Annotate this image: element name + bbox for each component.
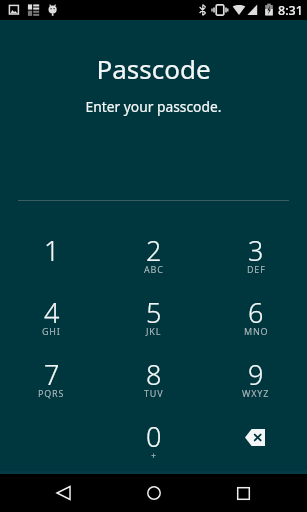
staticText: 1 <box>44 232 60 269</box>
staticText: 3 <box>248 232 264 269</box>
staticText: MNO <box>244 325 269 337</box>
button[interactable]: Recents <box>219 474 267 512</box>
button[interactable]: 9 <box>205 358 307 420</box>
staticText: TUV <box>144 387 164 399</box>
staticText: 4 <box>44 294 60 331</box>
staticText: PQRS <box>38 387 65 399</box>
button[interactable]: 2 <box>103 234 205 296</box>
staticText: 8:31 <box>278 2 303 19</box>
button[interactable]: 8 <box>103 358 205 420</box>
staticText: 8 <box>146 356 162 393</box>
staticText: 9 <box>248 356 264 393</box>
button[interactable]: 3 <box>205 234 307 296</box>
button[interactable]: 7 <box>0 358 103 420</box>
button[interactable]: 4 <box>0 296 103 358</box>
staticText: 6 <box>248 294 264 331</box>
staticText: GHI <box>42 325 61 337</box>
button[interactable]: 0 <box>103 420 205 482</box>
button[interactable]: 1 <box>0 234 103 296</box>
staticText: 0 <box>146 418 162 455</box>
staticText: JKL <box>146 325 162 337</box>
staticText: Passcode <box>0 51 307 86</box>
button[interactable]: Home <box>130 474 178 512</box>
button[interactable]: 6 <box>205 296 307 358</box>
staticText: Enter your passcode. <box>0 97 307 116</box>
staticText: 5 <box>146 294 162 331</box>
staticText: 7 <box>44 356 60 393</box>
staticText: ABC <box>144 263 164 275</box>
button[interactable]: Back <box>40 474 88 512</box>
staticText: 2 <box>146 232 162 269</box>
staticText: + <box>151 449 157 461</box>
button[interactable]: 5 <box>103 296 205 358</box>
staticText: DEF <box>247 263 266 275</box>
button[interactable]: Backspace <box>205 420 307 482</box>
staticText: WXYZ <box>242 387 270 399</box>
